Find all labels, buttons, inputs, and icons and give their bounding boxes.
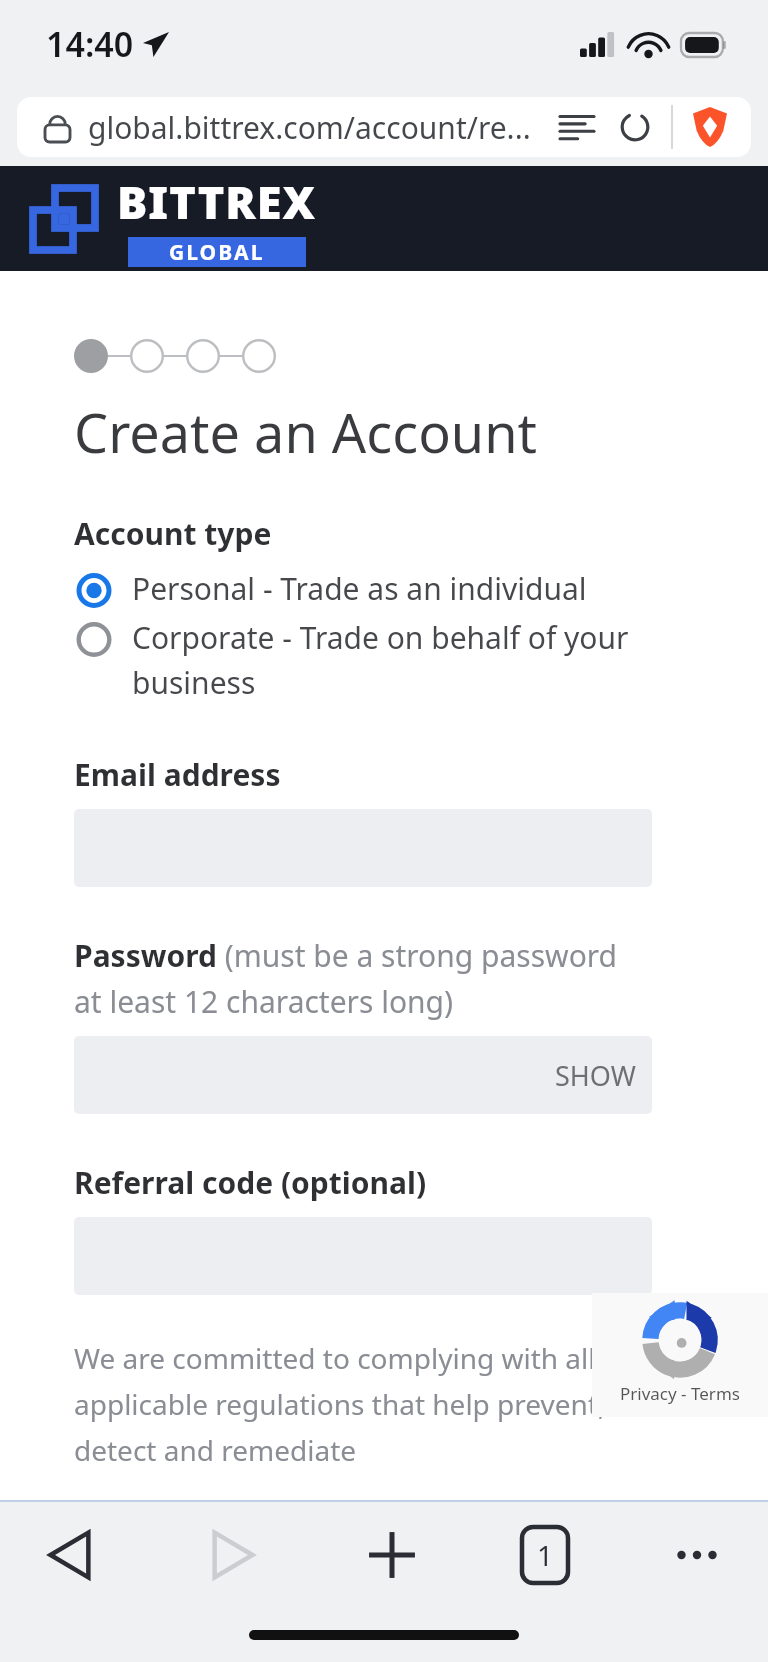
button[interactable]: Back	[40, 1524, 102, 1586]
button[interactable]: Brave Shields	[693, 107, 727, 147]
button[interactable]: global.bittrex.com/account/re...	[17, 97, 751, 157]
button[interactable]: Personal - Trade as an individual	[74, 564, 652, 613]
button[interactable]: Step 3	[186, 339, 220, 373]
staticText: Password (must be a strong password at l…	[74, 935, 652, 1022]
staticText: Create an Account	[74, 395, 538, 469]
button[interactable]: Reader mode	[560, 114, 594, 141]
staticText: 14:40	[46, 21, 134, 67]
staticText: Personal - Trade as an individual	[132, 568, 587, 609]
button[interactable]: SHOW	[74, 1036, 652, 1114]
staticText: Referral code (optional)	[74, 1162, 427, 1203]
button[interactable]: New tab	[361, 1524, 423, 1586]
button[interactable]: Tabs, 1 open	[522, 1527, 568, 1583]
button[interactable]: Step 2	[130, 339, 164, 373]
staticText: SHOW	[555, 1057, 636, 1094]
staticText: 1	[537, 1536, 554, 1574]
button[interactable]: reCAPTCHA privacy and terms	[592, 1293, 768, 1417]
staticText: Privacy - Terms	[620, 1382, 740, 1405]
button[interactable]: Step 4	[242, 339, 276, 373]
button[interactable]: Forward	[201, 1524, 263, 1586]
staticText: global.bittrex.com/account/re...	[88, 107, 531, 148]
staticText: Corporate - Trade on behalf of your busi…	[132, 617, 652, 702]
staticText: Email address	[74, 754, 281, 795]
button[interactable]: Step 1	[74, 339, 108, 373]
button[interactable]: Corporate - Trade on behalf of your busi…	[74, 613, 652, 706]
button[interactable]: Bittrex Global home	[33, 171, 316, 267]
button[interactable]: Reload	[619, 111, 651, 143]
staticText: GLOBAL	[169, 238, 265, 267]
staticText: BITTREX	[117, 171, 316, 232]
staticText: Account type	[74, 513, 272, 554]
staticText: We are committed to complying with all a…	[74, 1339, 652, 1469]
button[interactable]: More options	[666, 1524, 728, 1586]
